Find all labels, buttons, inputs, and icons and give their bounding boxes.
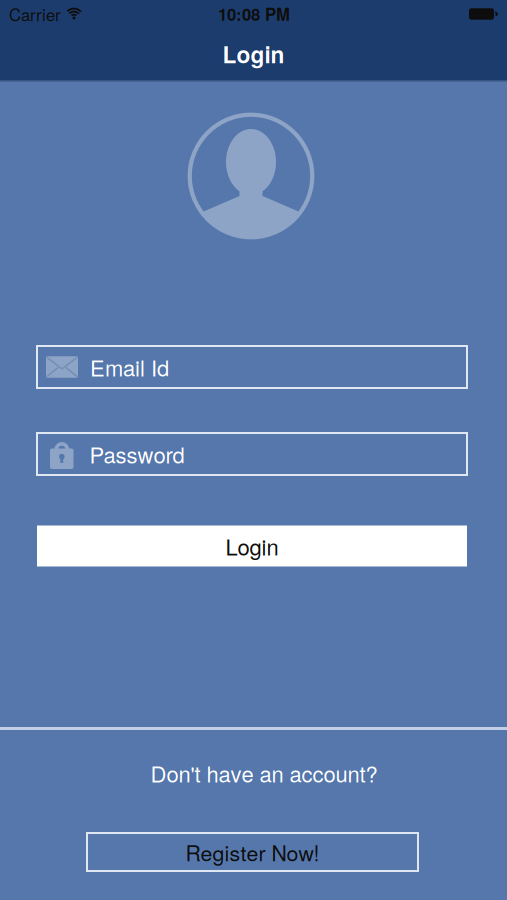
staticText: Don't have an account? xyxy=(150,757,377,789)
button[interactable]: Login xyxy=(37,525,467,566)
staticText: Login xyxy=(222,38,284,70)
staticText: 10:08 PM xyxy=(218,2,290,26)
staticText: Password xyxy=(89,438,184,470)
staticText: Email Id xyxy=(90,351,169,383)
staticText: Carrier xyxy=(9,2,61,26)
button[interactable]: Email Id xyxy=(37,346,467,388)
button[interactable]: Register Now! xyxy=(87,833,418,871)
staticText: Register Now! xyxy=(185,837,319,867)
staticText: Login xyxy=(225,530,278,562)
button[interactable]: Password xyxy=(37,433,467,475)
